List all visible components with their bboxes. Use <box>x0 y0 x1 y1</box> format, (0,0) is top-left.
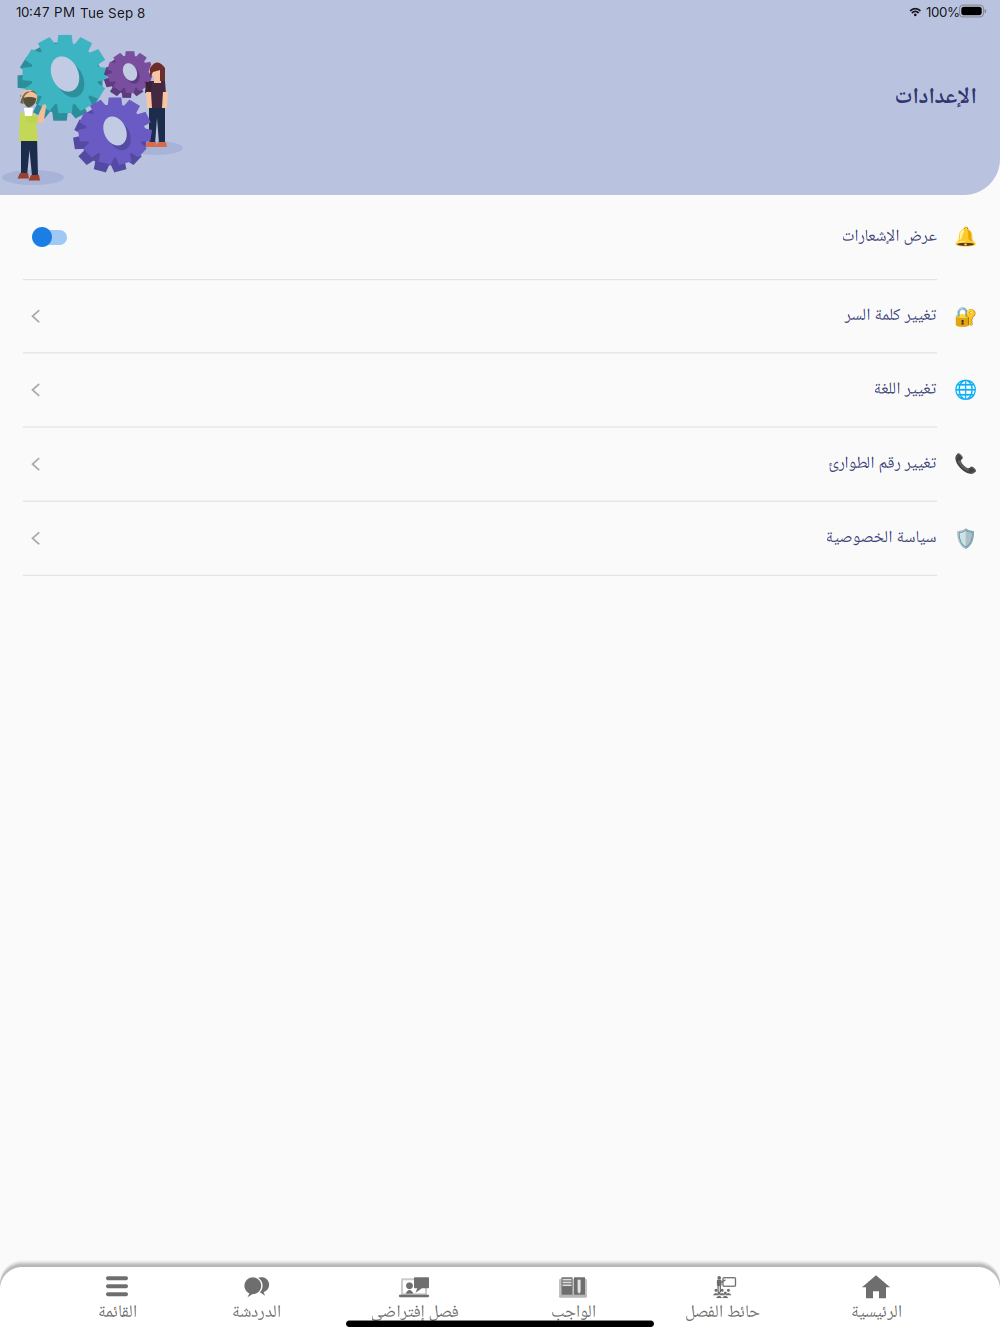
staticText: 🔐 <box>954 305 977 327</box>
button[interactable]: تغيير اللغة <box>0 353 1000 428</box>
staticText: عرض الإشعارات <box>841 223 936 251</box>
staticText: 🛡️ <box>954 527 977 549</box>
button[interactable]: عرض الإشعارات <box>0 195 1000 280</box>
staticText: تغيير اللغة <box>873 376 936 404</box>
staticText: 🔔 <box>954 226 977 248</box>
staticText: 100% <box>926 4 960 20</box>
staticText: القائمة <box>97 1298 136 1328</box>
button[interactable]: الدردشة <box>186 1275 326 1325</box>
button[interactable]: تغيير كلمة السر <box>0 280 1000 353</box>
button[interactable]: حائط الفصل <box>647 1275 797 1325</box>
staticText: الدردشة <box>231 1298 280 1328</box>
button[interactable]: تغيير رقم الطوارئ <box>0 428 1000 502</box>
staticText: الرئيسية <box>850 1298 901 1328</box>
staticText: تغيير كلمة السر <box>844 302 936 330</box>
button[interactable]: الواجب <box>503 1275 643 1325</box>
staticText: 📞 <box>954 453 977 475</box>
staticText: فصل إفتراضي <box>370 1298 458 1328</box>
staticText: سياسة الخصوصية <box>825 524 936 552</box>
staticText: 10:47 PM <box>16 4 75 20</box>
staticText: حائط الفصل <box>684 1298 759 1328</box>
staticText: 🌐 <box>954 379 977 401</box>
button[interactable]: فصل إفتراضي <box>334 1275 494 1325</box>
button[interactable]: الرئيسية <box>806 1275 946 1325</box>
staticText: Tue Sep 8 <box>80 5 145 21</box>
button[interactable]: سياسة الخصوصية <box>0 502 1000 576</box>
staticText: الإعدادات <box>894 79 976 117</box>
button[interactable]: القائمة <box>52 1275 182 1325</box>
staticText: تغيير رقم الطوارئ <box>828 450 936 478</box>
staticText: الواجب <box>550 1298 595 1328</box>
